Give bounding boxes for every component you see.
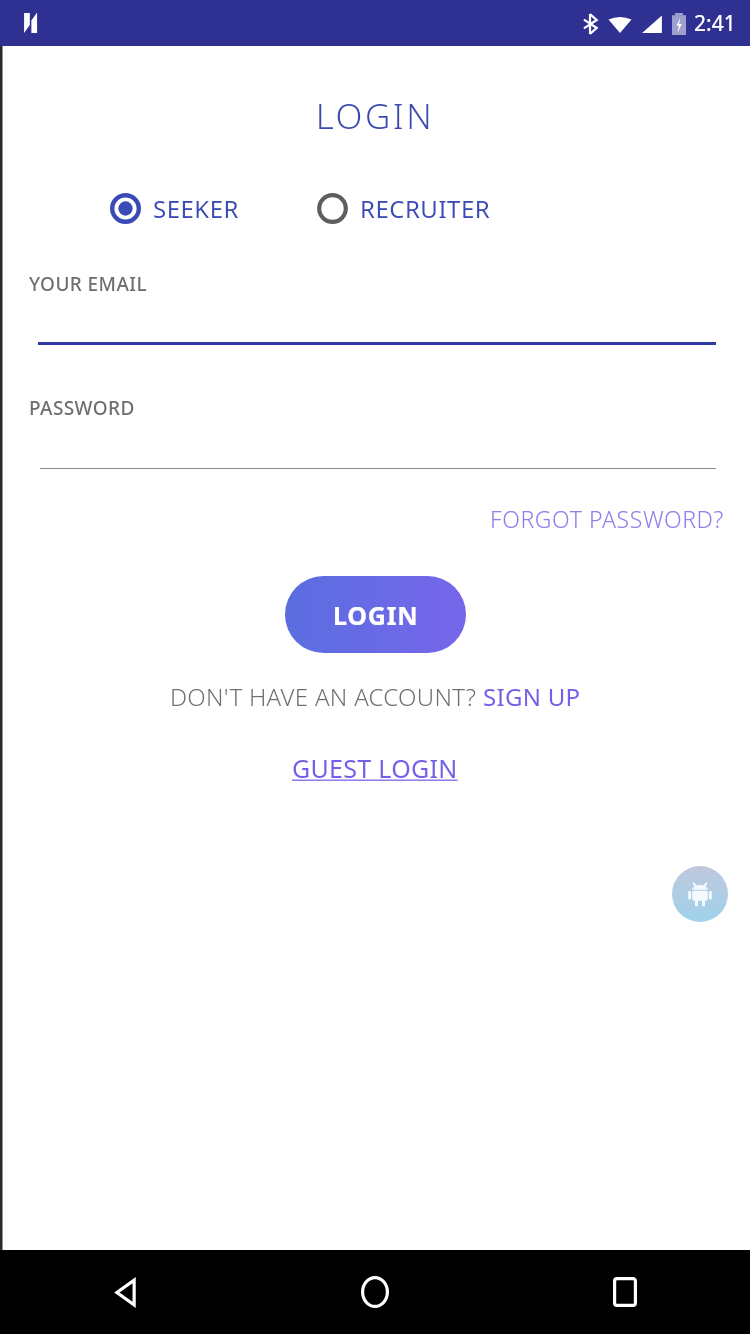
button[interactable]: Home (345, 1262, 405, 1322)
staticText: PASSWORD (29, 395, 135, 421)
staticText: LOGIN (333, 598, 419, 632)
button[interactable]: LOGIN (285, 576, 466, 653)
staticText: YOUR EMAIL (29, 271, 147, 297)
button[interactable]: FORGOT PASSWORD? (490, 497, 750, 540)
staticText: LOGIN (0, 92, 750, 140)
button[interactable]: RECRUITER (317, 186, 491, 231)
button[interactable]: GUEST LOGIN (286, 745, 464, 791)
staticText: SEEKER (153, 192, 239, 225)
staticText: GUEST LOGIN (292, 751, 458, 785)
button[interactable]: Android assistant (672, 866, 728, 922)
button[interactable]: Recents (595, 1262, 655, 1322)
button[interactable]: Back (95, 1262, 155, 1322)
staticText: 2:41 (694, 9, 736, 38)
button[interactable]: SIGN UP (483, 680, 581, 713)
staticText: SIGN UP (483, 680, 581, 713)
staticText: DON'T HAVE AN ACCOUNT? (170, 680, 483, 713)
staticText: RECRUITER (360, 192, 491, 225)
staticText: FORGOT PASSWORD? (490, 503, 724, 534)
button[interactable]: SEEKER (110, 186, 239, 231)
